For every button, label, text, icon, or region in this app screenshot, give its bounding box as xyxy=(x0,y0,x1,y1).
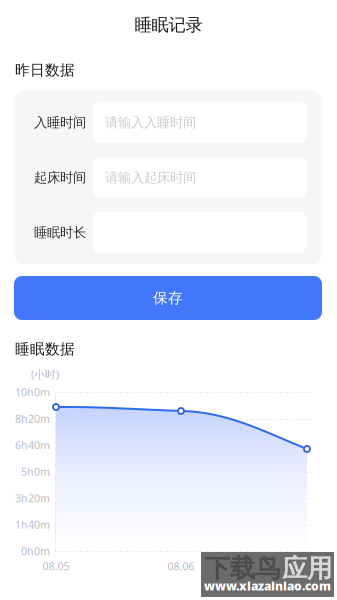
staticText: 起床时间 xyxy=(34,169,86,186)
button[interactable]: 起床时间 xyxy=(14,157,322,198)
staticText: 10h0m xyxy=(15,385,50,399)
button[interactable]: 保存 xyxy=(14,276,322,320)
button[interactable]: 入睡时间 xyxy=(14,102,322,143)
staticText: 请输入起床时间 xyxy=(105,169,196,186)
staticText: 睡眠数据 xyxy=(15,340,75,358)
staticText: 0h0m xyxy=(21,544,50,558)
staticText: 6h40m xyxy=(15,438,50,452)
staticText: 睡眠时长 xyxy=(34,224,86,241)
staticText: 昨日数据 xyxy=(15,61,75,79)
staticText: 请输入入睡时间 xyxy=(105,114,196,131)
staticText: 保存 xyxy=(153,289,183,307)
staticText: www.xiazainiao.com xyxy=(204,578,331,594)
button[interactable]: 睡眠时长 xyxy=(14,212,322,253)
staticText: (小时) xyxy=(31,367,59,381)
staticText: 应用 xyxy=(282,553,332,584)
staticText: 08.06 xyxy=(167,559,194,573)
staticText: 入睡时间 xyxy=(34,114,86,131)
staticText: 1h40m xyxy=(15,517,50,532)
staticText: 睡眠记录 xyxy=(134,14,202,36)
staticText: 5h0m xyxy=(21,464,50,479)
staticText: 08.05 xyxy=(42,559,69,573)
staticText: 8h20m xyxy=(15,411,50,426)
staticText: 3h20m xyxy=(15,491,50,505)
staticText: 下载鸟 xyxy=(205,553,280,584)
